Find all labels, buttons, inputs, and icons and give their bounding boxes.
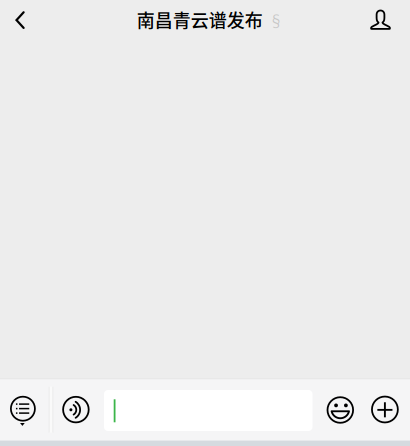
button[interactable]: Back: [0, 0, 43, 41]
button[interactable]: Chat information: [358, 0, 402, 40]
staticText: §: [269, 9, 284, 30]
button[interactable]: Message: [104, 390, 312, 431]
button[interactable]: Voice message: [54, 385, 98, 435]
button[interactable]: Account menu: [0, 386, 46, 438]
button[interactable]: Emoji: [318, 385, 362, 435]
button[interactable]: More: [363, 384, 407, 434]
staticText: 南昌青云谱发布: [137, 6, 263, 32]
